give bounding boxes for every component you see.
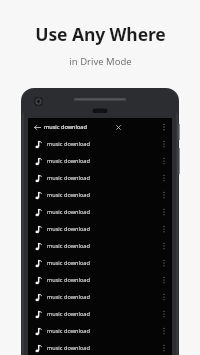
button[interactable]: Track options: [158, 240, 169, 251]
staticText: music download: [47, 157, 90, 165]
button[interactable]: music download: [28, 203, 172, 220]
button[interactable]: Clear search: [112, 121, 124, 133]
button[interactable]: Track options: [158, 325, 169, 336]
button[interactable]: music download: [28, 152, 172, 169]
staticText: music download: [47, 242, 90, 250]
staticText: music download: [47, 208, 90, 216]
button[interactable]: Track options: [158, 223, 169, 234]
staticText: music download: [47, 259, 90, 267]
button[interactable]: music download: [28, 135, 172, 152]
button[interactable]: More options: [158, 121, 169, 132]
staticText: music download: [47, 310, 90, 318]
button[interactable]: Track options: [158, 189, 169, 200]
button[interactable]: music download: [28, 186, 172, 203]
staticText: music download: [44, 123, 87, 131]
staticText: in Drive Mode: [69, 55, 132, 68]
button[interactable]: music download: [28, 339, 172, 355]
button[interactable]: Track options: [158, 138, 169, 149]
button[interactable]: Track options: [158, 172, 169, 183]
button[interactable]: music download: [28, 220, 172, 237]
staticText: music download: [47, 276, 90, 284]
button[interactable]: Track options: [158, 342, 169, 353]
staticText: music download: [47, 293, 90, 301]
button[interactable]: music download: [28, 254, 172, 271]
button[interactable]: Track options: [158, 257, 169, 268]
button[interactable]: music download: [28, 288, 172, 305]
staticText: music download: [47, 344, 90, 352]
staticText: music download: [47, 140, 90, 148]
button[interactable]: Track options: [158, 155, 169, 166]
button[interactable]: Back: [28, 118, 172, 135]
button[interactable]: Track options: [158, 308, 169, 319]
staticText: music download: [47, 191, 90, 199]
staticText: music download: [47, 174, 90, 182]
button[interactable]: music download: [28, 169, 172, 186]
button[interactable]: music download: [28, 271, 172, 288]
staticText: music download: [47, 225, 90, 233]
button[interactable]: Track options: [158, 291, 169, 302]
staticText: music download: [47, 327, 90, 335]
button[interactable]: Track options: [158, 206, 169, 217]
staticText: Use Any Where: [35, 22, 166, 46]
button[interactable]: music download: [28, 322, 172, 339]
button[interactable]: music download: [28, 237, 172, 254]
button[interactable]: music download: [28, 305, 172, 322]
button[interactable]: Track options: [158, 274, 169, 285]
button[interactable]: Back: [31, 121, 43, 133]
